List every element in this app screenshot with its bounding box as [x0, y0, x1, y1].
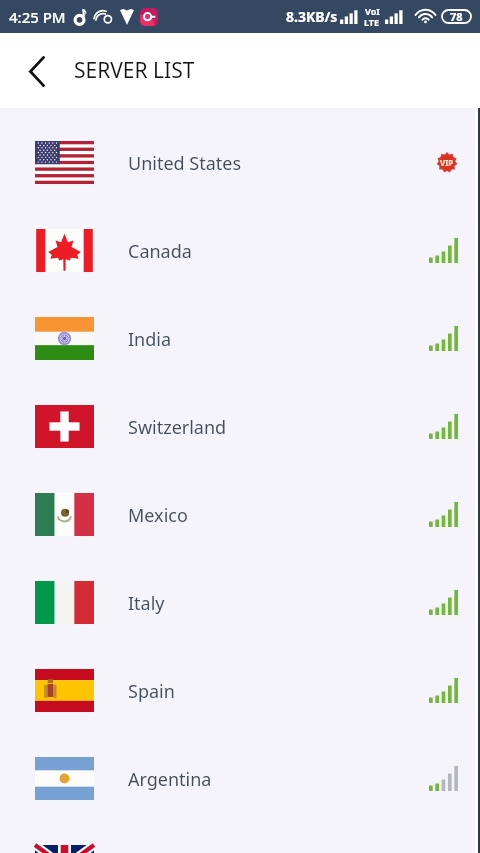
staticText: LTE — [364, 16, 380, 28]
button[interactable]: Canada — [0, 206, 480, 294]
button[interactable]: Spain — [0, 646, 480, 734]
staticText: SERVER LIST — [74, 56, 195, 85]
staticText: 78 — [450, 9, 463, 24]
staticText: Canada — [128, 239, 192, 264]
staticText: Argentina — [128, 767, 212, 792]
button[interactable]: United Kingdom — [0, 822, 480, 853]
staticText: United States — [128, 151, 242, 176]
staticText: VoI — [365, 5, 380, 17]
button[interactable]: Mexico — [0, 470, 480, 558]
button[interactable]: India — [0, 294, 480, 382]
staticText: VIP — [440, 157, 454, 168]
staticText: Mexico — [128, 503, 188, 528]
button[interactable]: Back — [13, 43, 61, 99]
button[interactable]: United States — [0, 118, 480, 206]
button[interactable]: Italy — [0, 558, 480, 646]
staticText: 4:25 PM — [9, 7, 66, 27]
staticText: India — [128, 327, 172, 352]
staticText: Switzerland — [128, 415, 227, 440]
button[interactable]: Switzerland — [0, 382, 480, 470]
staticText: 8.3KB/s — [286, 7, 338, 26]
button[interactable]: Argentina — [0, 734, 480, 822]
staticText: Italy — [128, 591, 165, 616]
staticText: Spain — [128, 679, 175, 704]
